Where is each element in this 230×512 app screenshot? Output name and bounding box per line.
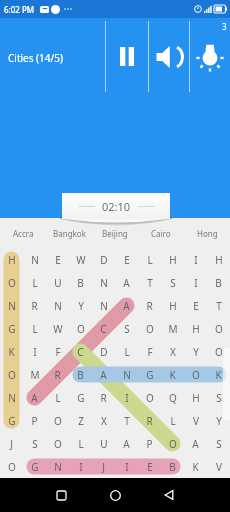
button[interactable]: Y	[184, 340, 207, 363]
button[interactable]: C	[69, 340, 92, 363]
button[interactable]: U	[92, 432, 115, 455]
button[interactable]: Hint	[190, 21, 230, 92]
button[interactable]: O	[184, 363, 207, 386]
button[interactable]: I	[184, 271, 207, 294]
button[interactable]: O	[0, 455, 23, 478]
button[interactable]: N	[46, 455, 69, 478]
button[interactable]: R	[138, 409, 161, 432]
button[interactable]: W	[69, 248, 92, 271]
button[interactable]: L	[138, 248, 161, 271]
button[interactable]: L	[23, 271, 46, 294]
button[interactable]: G	[138, 363, 161, 386]
button[interactable]: A	[115, 294, 138, 317]
button[interactable]: G	[0, 317, 23, 340]
button[interactable]: U	[46, 271, 69, 294]
button[interactable]: M	[161, 317, 184, 340]
button[interactable]: X	[92, 409, 115, 432]
button[interactable]: G	[69, 386, 92, 409]
button[interactable]: L	[69, 432, 92, 455]
button[interactable]: E	[138, 455, 161, 478]
button[interactable]: H	[184, 386, 207, 409]
button[interactable]: O	[0, 271, 23, 294]
button[interactable]: Z	[69, 409, 92, 432]
button[interactable]: F	[46, 340, 69, 363]
button[interactable]: L	[161, 409, 184, 432]
button[interactable]: H	[161, 294, 184, 317]
button[interactable]: N	[46, 294, 69, 317]
button[interactable]: D	[92, 340, 115, 363]
button[interactable]: O	[207, 317, 230, 340]
button[interactable]: Q	[161, 386, 184, 409]
button[interactable]: K	[161, 363, 184, 386]
button[interactable]: H	[0, 248, 23, 271]
button[interactable]: O	[69, 317, 92, 340]
button[interactable]: T	[115, 409, 138, 432]
button[interactable]: Beijing	[92, 218, 138, 248]
button[interactable]: H	[161, 248, 184, 271]
button[interactable]: A	[184, 432, 207, 455]
button[interactable]: Sound	[149, 21, 189, 92]
button[interactable]: C	[92, 317, 115, 340]
button[interactable]: G	[23, 455, 46, 478]
button[interactable]: F	[138, 340, 161, 363]
button[interactable]: K	[0, 340, 23, 363]
button[interactable]: S	[207, 386, 230, 409]
button[interactable]: I	[23, 340, 46, 363]
button[interactable]: S	[161, 271, 184, 294]
button[interactable]: R	[138, 294, 161, 317]
button[interactable]: O	[46, 432, 69, 455]
button[interactable]: N	[92, 271, 115, 294]
button[interactable]: O	[207, 340, 230, 363]
button[interactable]: L	[46, 386, 69, 409]
button[interactable]: M	[23, 363, 46, 386]
button[interactable]: K	[207, 363, 230, 386]
button[interactable]: E	[184, 294, 207, 317]
button[interactable]: N	[23, 248, 46, 271]
button[interactable]: P	[23, 409, 46, 432]
button[interactable]: V	[184, 409, 207, 432]
button[interactable]: N	[115, 363, 138, 386]
button[interactable]: N	[92, 294, 115, 317]
button[interactable]: H	[184, 317, 207, 340]
button[interactable]: R	[92, 386, 115, 409]
button[interactable]: Home	[98, 478, 132, 512]
button[interactable]: B	[69, 271, 92, 294]
button[interactable]: J	[0, 432, 23, 455]
button[interactable]: H	[207, 248, 230, 271]
button[interactable]: Hong	[184, 218, 230, 248]
button[interactable]: E	[115, 248, 138, 271]
button[interactable]: P	[138, 432, 161, 455]
button[interactable]: Bangkok	[46, 218, 92, 248]
button[interactable]: S	[207, 432, 230, 455]
button[interactable]: O	[138, 317, 161, 340]
button[interactable]: T	[207, 294, 230, 317]
button[interactable]: D	[92, 248, 115, 271]
button[interactable]: X	[161, 340, 184, 363]
button[interactable]: I	[184, 248, 207, 271]
button[interactable]: O	[46, 409, 69, 432]
button[interactable]: E	[46, 248, 69, 271]
button[interactable]: B	[161, 455, 184, 478]
button[interactable]: A	[115, 271, 138, 294]
button[interactable]: K	[184, 455, 207, 478]
button[interactable]: G	[0, 409, 23, 432]
button[interactable]: Pause	[106, 21, 148, 92]
button[interactable]: Y	[69, 294, 92, 317]
button[interactable]: T	[138, 271, 161, 294]
button[interactable]: N	[0, 386, 23, 409]
button[interactable]: L	[115, 340, 138, 363]
button[interactable]: A	[23, 386, 46, 409]
button[interactable]: N	[0, 294, 23, 317]
button[interactable]: O	[161, 432, 184, 455]
button[interactable]: B	[69, 363, 92, 386]
button[interactable]: Recent apps	[44, 478, 78, 512]
button[interactable]: S	[23, 432, 46, 455]
button[interactable]: Accra	[0, 218, 46, 248]
button[interactable]: O	[0, 363, 23, 386]
button[interactable]: O	[138, 386, 161, 409]
button[interactable]: W	[46, 317, 69, 340]
button[interactable]: Y	[207, 409, 230, 432]
button[interactable]: Cairo	[138, 218, 184, 248]
button[interactable]: Back	[152, 478, 186, 512]
button[interactable]: R	[23, 294, 46, 317]
